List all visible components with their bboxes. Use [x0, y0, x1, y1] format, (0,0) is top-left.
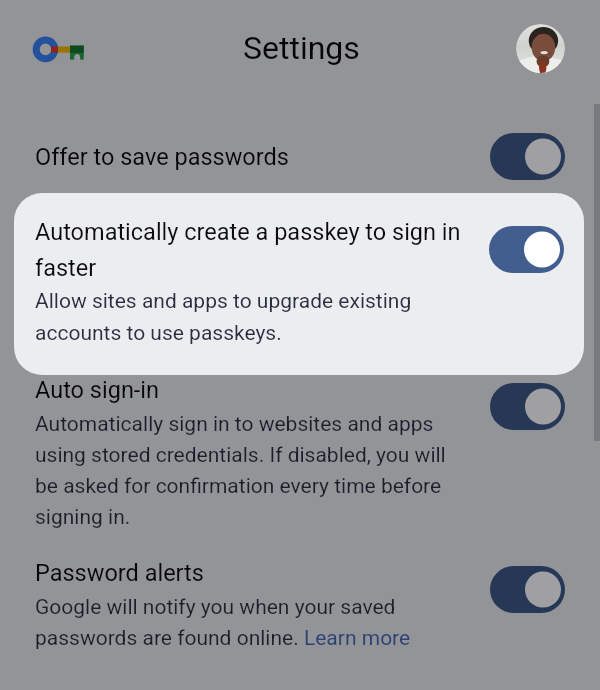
staticText: Settings	[243, 29, 360, 67]
staticText: Offer to save passwords	[35, 136, 289, 172]
button[interactable]: Account	[516, 24, 565, 73]
button[interactable]: Automatically create a passkey to sign i…	[14, 193, 584, 375]
button[interactable]: Password alerts	[0, 557, 600, 677]
staticText: Password alerts	[35, 552, 204, 588]
button[interactable]: Auto sign-in	[0, 374, 600, 546]
button[interactable]: Google Password Manager	[30, 30, 88, 88]
staticText: Auto sign-in	[35, 369, 160, 405]
button[interactable]: Toggle setting	[490, 383, 565, 430]
button[interactable]: Offer to save passwords	[0, 120, 600, 192]
staticText: Allow sites and apps to upgrade existing…	[35, 283, 430, 347]
button[interactable]: Toggle setting	[489, 226, 564, 273]
button[interactable]: Toggle setting	[490, 566, 565, 613]
staticText: Automatically sign in to websites and ap…	[35, 406, 455, 530]
staticText: Automatically create a passkey to sign i…	[35, 211, 465, 283]
staticText: Google will notify you when your saved p…	[35, 589, 435, 651]
button[interactable]: Toggle setting	[490, 133, 565, 180]
